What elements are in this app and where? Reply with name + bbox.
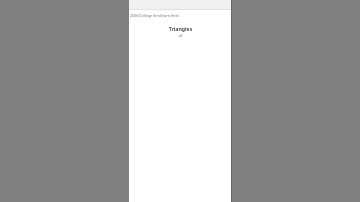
button[interactable]: 2006/College htm/learn.html <box>129 12 232 19</box>
button[interactable] <box>129 0 232 9</box>
staticText: Triangles <box>129 25 232 32</box>
button[interactable]: Triangles <box>129 25 232 38</box>
staticText: of <box>129 33 232 38</box>
staticText: 2006/College htm/learn.html <box>130 13 232 18</box>
